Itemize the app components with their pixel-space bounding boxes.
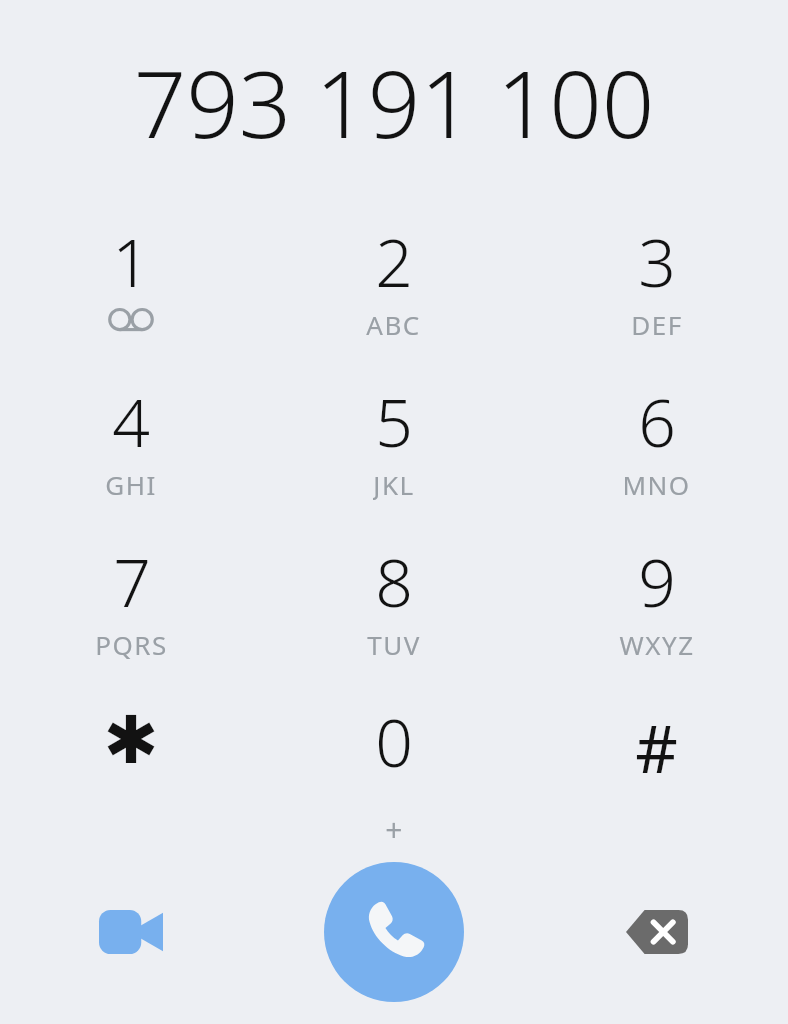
button[interactable]: Backspace <box>525 852 788 1012</box>
button[interactable]: 9 <box>525 536 788 660</box>
button[interactable]: 793 191 100 <box>0 40 788 165</box>
button[interactable]: # <box>525 696 788 820</box>
staticText: 3 <box>638 216 676 306</box>
staticText: PQRS <box>95 627 168 660</box>
staticText: 9 <box>638 536 676 626</box>
staticText: # <box>635 702 678 792</box>
staticText: 1 <box>112 216 150 306</box>
staticText: MNO <box>622 467 691 500</box>
staticText: 6 <box>638 376 676 466</box>
staticText: 5 <box>375 376 413 466</box>
button[interactable]: 7 <box>0 536 262 660</box>
button[interactable]: 1 <box>0 216 262 340</box>
staticText: + <box>385 809 404 842</box>
button[interactable]: ✱ <box>0 696 262 820</box>
staticText: GHI <box>105 467 157 500</box>
button[interactable]: Call <box>324 862 464 1002</box>
button[interactable]: 5 <box>262 376 525 500</box>
staticText: 2 <box>375 216 413 306</box>
button[interactable]: 6 <box>525 376 788 500</box>
button[interactable]: 8 <box>262 536 525 660</box>
staticText: JKL <box>373 467 415 500</box>
button[interactable]: 4 <box>0 376 262 500</box>
staticText: DEF <box>631 307 683 340</box>
staticText: 0 <box>375 696 413 786</box>
staticText: TUV <box>367 627 421 660</box>
button[interactable]: Video call <box>0 852 262 1012</box>
staticText: ABC <box>366 307 421 340</box>
staticText: 793 191 100 <box>0 40 788 165</box>
staticText: 4 <box>112 376 150 466</box>
staticText: ✱ <box>103 702 159 779</box>
button[interactable]: 3 <box>525 216 788 340</box>
staticText: WXYZ <box>619 627 695 660</box>
staticText: 8 <box>375 536 413 626</box>
button[interactable]: 0 <box>262 696 525 820</box>
button[interactable]: 2 <box>262 216 525 340</box>
staticText: 7 <box>113 536 151 626</box>
